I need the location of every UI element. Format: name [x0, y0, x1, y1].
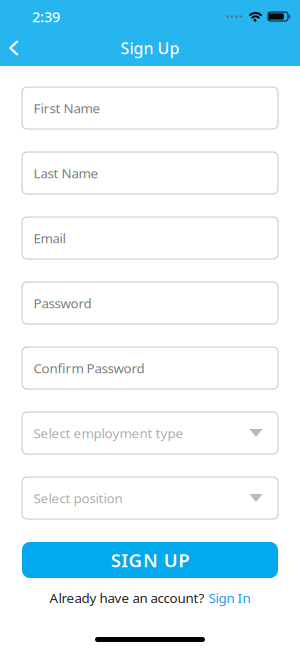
staticText: Select position — [33, 489, 122, 507]
button[interactable]: First Name — [22, 87, 278, 129]
staticText: Select employment type — [33, 424, 183, 442]
button[interactable]: Last Name — [22, 152, 278, 194]
staticText: Sign Up — [120, 37, 179, 59]
staticText: Last Name — [33, 164, 98, 182]
button[interactable]: Select position — [22, 477, 278, 519]
button[interactable]: Email — [22, 217, 278, 259]
button[interactable]: Select employment type — [22, 412, 278, 454]
staticText: Email — [33, 229, 65, 247]
staticText: SIGN UP — [111, 548, 189, 572]
button[interactable]: SIGN UP — [22, 542, 278, 578]
button[interactable]: Confirm Password — [22, 347, 278, 389]
staticText: Confirm Password — [33, 359, 144, 377]
staticText: 2:39 — [32, 7, 60, 26]
staticText: First Name — [33, 99, 100, 117]
staticText: Sign In — [208, 589, 250, 607]
staticText: Already have an account? — [49, 589, 204, 607]
staticText: Password — [33, 294, 91, 312]
button[interactable]: Back — [0, 32, 19, 63]
button[interactable]: Password — [22, 282, 278, 324]
button[interactable]: Sign In — [208, 589, 250, 607]
